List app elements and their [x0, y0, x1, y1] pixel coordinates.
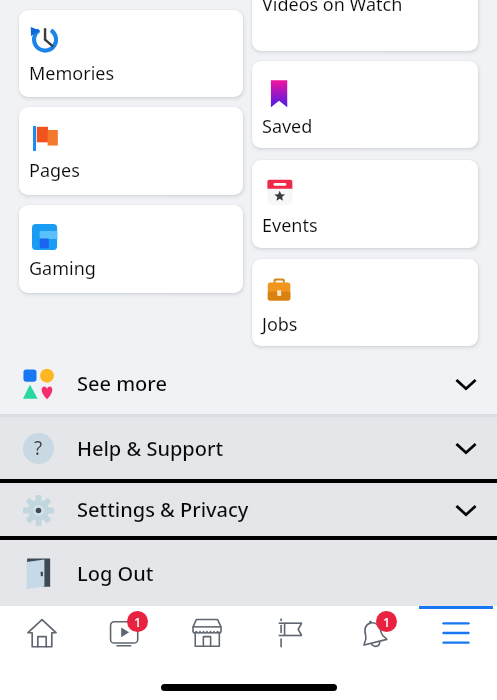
button[interactable]: See more — [0, 353, 497, 414]
button[interactable]: ? — [0, 417, 497, 479]
button[interactable]: Pages — [19, 107, 243, 195]
staticText: Help & Support — [77, 435, 224, 462]
button[interactable]: Menu — [414, 606, 497, 658]
staticText: Settings & Privacy — [77, 496, 249, 523]
staticText: Saved — [262, 114, 313, 139]
button[interactable]: Events — [252, 160, 478, 248]
button[interactable]: Marketplace — [165, 606, 248, 658]
button[interactable]: Jobs — [252, 259, 478, 346]
staticText: Gaming — [29, 256, 96, 281]
button[interactable]: Saved — [252, 61, 478, 148]
staticText: 1 — [383, 613, 391, 631]
staticText: Events — [262, 213, 318, 238]
staticText: ? — [34, 435, 43, 461]
staticText: Memories — [29, 61, 115, 86]
staticText: Jobs — [262, 312, 298, 337]
staticText: See more — [77, 370, 167, 397]
button[interactable]: Gaming — [19, 205, 243, 293]
button[interactable]: Pages — [248, 606, 331, 658]
button[interactable]: Memories — [19, 10, 243, 97]
button[interactable]: Log Out — [0, 540, 497, 606]
staticText: Videos on Watch — [262, 0, 403, 17]
button[interactable]: Notifications — [331, 606, 414, 658]
staticText: 1 — [134, 613, 142, 631]
button[interactable]: Home — [0, 606, 82, 658]
staticText: Pages — [29, 158, 80, 183]
button[interactable]: Video — [82, 606, 165, 658]
button[interactable]: Videos on Watch — [252, 0, 478, 51]
button[interactable]: Settings & Privacy — [0, 479, 497, 540]
staticText: Log Out — [77, 560, 154, 587]
